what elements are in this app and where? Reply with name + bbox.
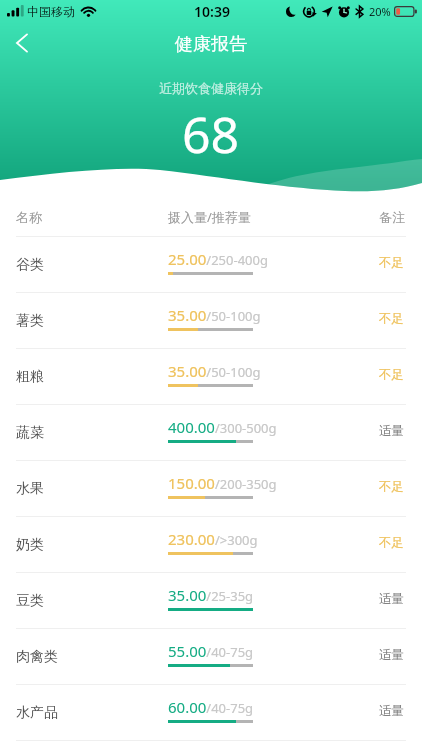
staticText: 水果	[16, 480, 44, 498]
staticText: 谷类	[16, 256, 44, 274]
staticText: 中国移动	[27, 4, 75, 19]
button[interactable]: 粗粮	[0, 349, 422, 405]
staticText: 不足	[379, 255, 404, 271]
staticText: 适量	[379, 647, 404, 663]
button[interactable]: 水产品	[0, 685, 422, 741]
staticText: 适量	[379, 591, 404, 607]
staticText: 适量	[379, 423, 404, 439]
staticText: 备注	[379, 209, 405, 225]
staticText: 粗粮	[16, 368, 44, 386]
staticText: 不足	[379, 311, 404, 327]
button[interactable]: 奶类	[0, 517, 422, 573]
staticText: 近期饮食健康得分	[159, 80, 263, 96]
button[interactable]: 薯类	[0, 293, 422, 349]
staticText: 健康报告	[175, 33, 247, 56]
staticText: 不足	[379, 479, 404, 495]
staticText: 20%	[369, 4, 391, 19]
button[interactable]: 蔬菜	[0, 405, 422, 461]
staticText: 35.00/25-35g	[168, 585, 254, 605]
staticText: 150.00/200-350g	[168, 473, 277, 493]
staticText: 奶类	[16, 536, 44, 554]
staticText: 25.00/250-400g	[168, 249, 268, 269]
staticText: 名称	[16, 209, 42, 225]
staticText: 肉禽类	[16, 648, 58, 666]
button[interactable]: 豆类	[0, 573, 422, 629]
staticText: 薯类	[16, 312, 44, 330]
staticText: 蔬菜	[16, 424, 44, 442]
staticText: 10:39	[194, 2, 230, 21]
button[interactable]: 谷类	[0, 237, 422, 293]
staticText: 豆类	[16, 592, 44, 610]
staticText: 摄入量/推荐量	[168, 208, 251, 226]
button[interactable]: 水果	[0, 461, 422, 517]
staticText: 68	[182, 100, 240, 168]
staticText: 230.00/>300g	[168, 529, 258, 549]
button[interactable]: Back	[3, 24, 41, 62]
staticText: 400.00/300-500g	[168, 417, 277, 437]
staticText: 不足	[379, 367, 404, 383]
staticText: 60.00/40-75g	[168, 697, 254, 717]
staticText: 35.00/50-100g	[168, 305, 261, 325]
staticText: 不足	[379, 535, 404, 551]
staticText: 35.00/50-100g	[168, 361, 261, 381]
button[interactable]: 肉禽类	[0, 629, 422, 685]
staticText: 水产品	[16, 704, 58, 722]
staticText: 适量	[379, 703, 404, 719]
staticText: 55.00/40-75g	[168, 641, 254, 661]
